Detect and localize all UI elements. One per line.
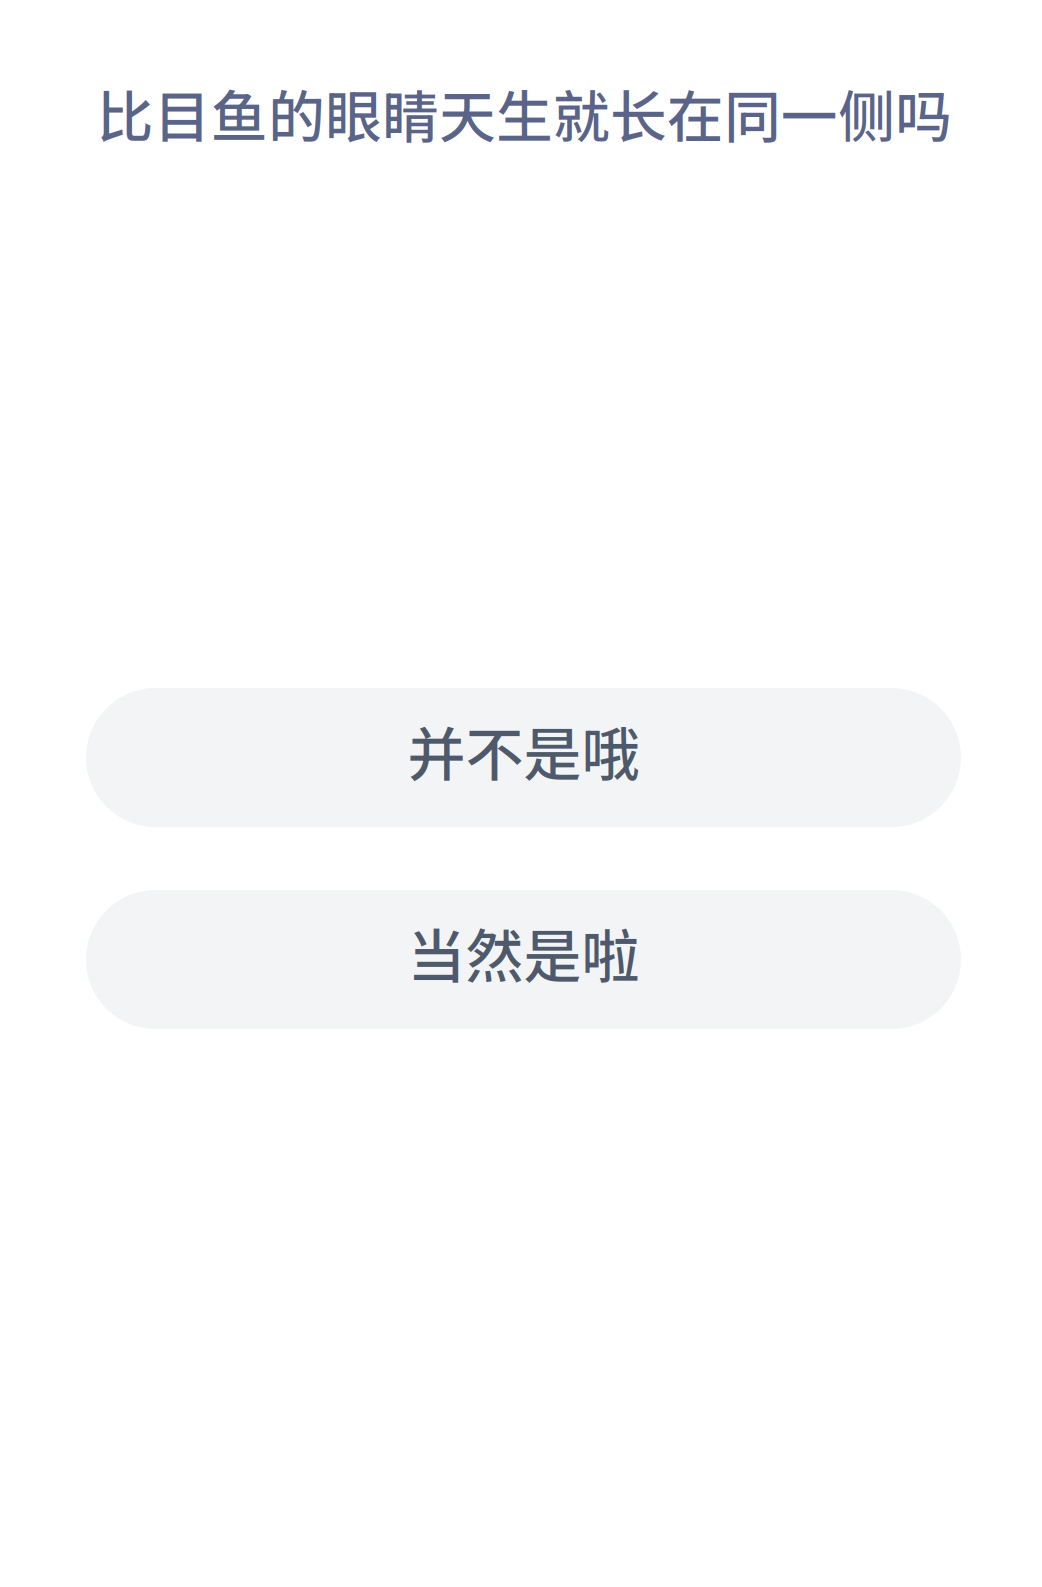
staticText: 比目鱼的眼睛天生就长在同一侧吗 (97, 72, 952, 154)
button[interactable]: 并不是哦 (86, 688, 961, 827)
button[interactable]: 当然是啦 (86, 890, 961, 1029)
staticText: 并不是哦 (407, 708, 639, 792)
staticText: 当然是啦 (407, 910, 639, 994)
